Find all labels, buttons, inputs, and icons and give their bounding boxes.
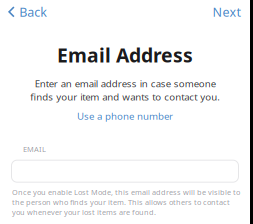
staticText: Next: [212, 3, 241, 20]
button[interactable]: Use a phone number: [0, 107, 250, 124]
staticText: Enter an email address in case someone f…: [30, 77, 220, 103]
staticText: Use a phone number: [77, 109, 173, 122]
staticText: Email Address: [57, 42, 193, 68]
staticText: Once you enable Lost Mode, this email ad…: [12, 187, 240, 217]
button[interactable]: Next: [206, 1, 253, 22]
staticText: EMAIL: [23, 144, 46, 154]
button[interactable]: Back: [0, 1, 53, 22]
staticText: Back: [19, 3, 47, 20]
